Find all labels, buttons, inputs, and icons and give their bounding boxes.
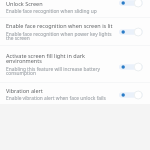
button[interactable]: Vibration alert — [0, 87, 150, 113]
button[interactable]: Toggle setting — [119, 62, 143, 72]
staticText: Unlock Screen — [6, 0, 43, 7]
staticText: Enable face recognition when power key l… — [6, 31, 114, 42]
staticText: Enable face recognition when sliding up — [6, 8, 97, 15]
button[interactable]: Unlock Screen — [0, 0, 150, 26]
staticText: Enable vibration alert when face unlock … — [6, 95, 106, 102]
staticText: Vibration alert — [6, 87, 43, 94]
button[interactable]: Activate screen fill light in dark envir… — [0, 52, 150, 78]
staticText: Activate screen fill light in dark envir… — [6, 52, 114, 65]
button[interactable]: Toggle setting — [119, 27, 143, 37]
button[interactable]: Enable face recognition when screen is l… — [0, 22, 150, 48]
staticText: Enabling this feature will increase batt… — [6, 66, 114, 77]
button[interactable]: Toggle setting — [119, 0, 143, 8]
staticText: Enable face recognition when screen is l… — [6, 22, 113, 29]
button[interactable]: Toggle setting — [119, 90, 143, 100]
